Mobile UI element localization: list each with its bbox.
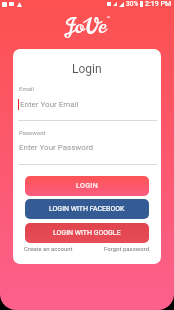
button[interactable]: LOGIN WITH FACEBOOK	[25, 199, 149, 219]
button[interactable]: Enter Your Password	[19, 143, 161, 152]
staticText: Login	[72, 62, 102, 76]
staticText: LOGIN WITH GOOGLE	[53, 229, 121, 237]
button[interactable]: LOGIN WITH GOOGLE	[25, 223, 149, 243]
staticText: Enter Your Password	[19, 143, 94, 152]
button[interactable]: Enter Your Email	[18, 99, 161, 110]
button[interactable]: Create an account	[24, 245, 73, 252]
button[interactable]: LOGIN	[25, 176, 149, 196]
staticText: JoVe	[64, 12, 107, 42]
staticText: 30%	[126, 0, 139, 8]
staticText: 2:19 PM	[145, 0, 172, 8]
staticText: Enter Your Email	[20, 100, 79, 109]
staticText: Password	[19, 129, 46, 136]
staticText: Email	[19, 85, 34, 92]
staticText: LOGIN WITH FACEBOOK	[49, 205, 125, 213]
button[interactable]: Forgot password	[104, 245, 150, 252]
staticText: ™	[107, 15, 111, 21]
staticText: LOGIN	[76, 182, 99, 190]
